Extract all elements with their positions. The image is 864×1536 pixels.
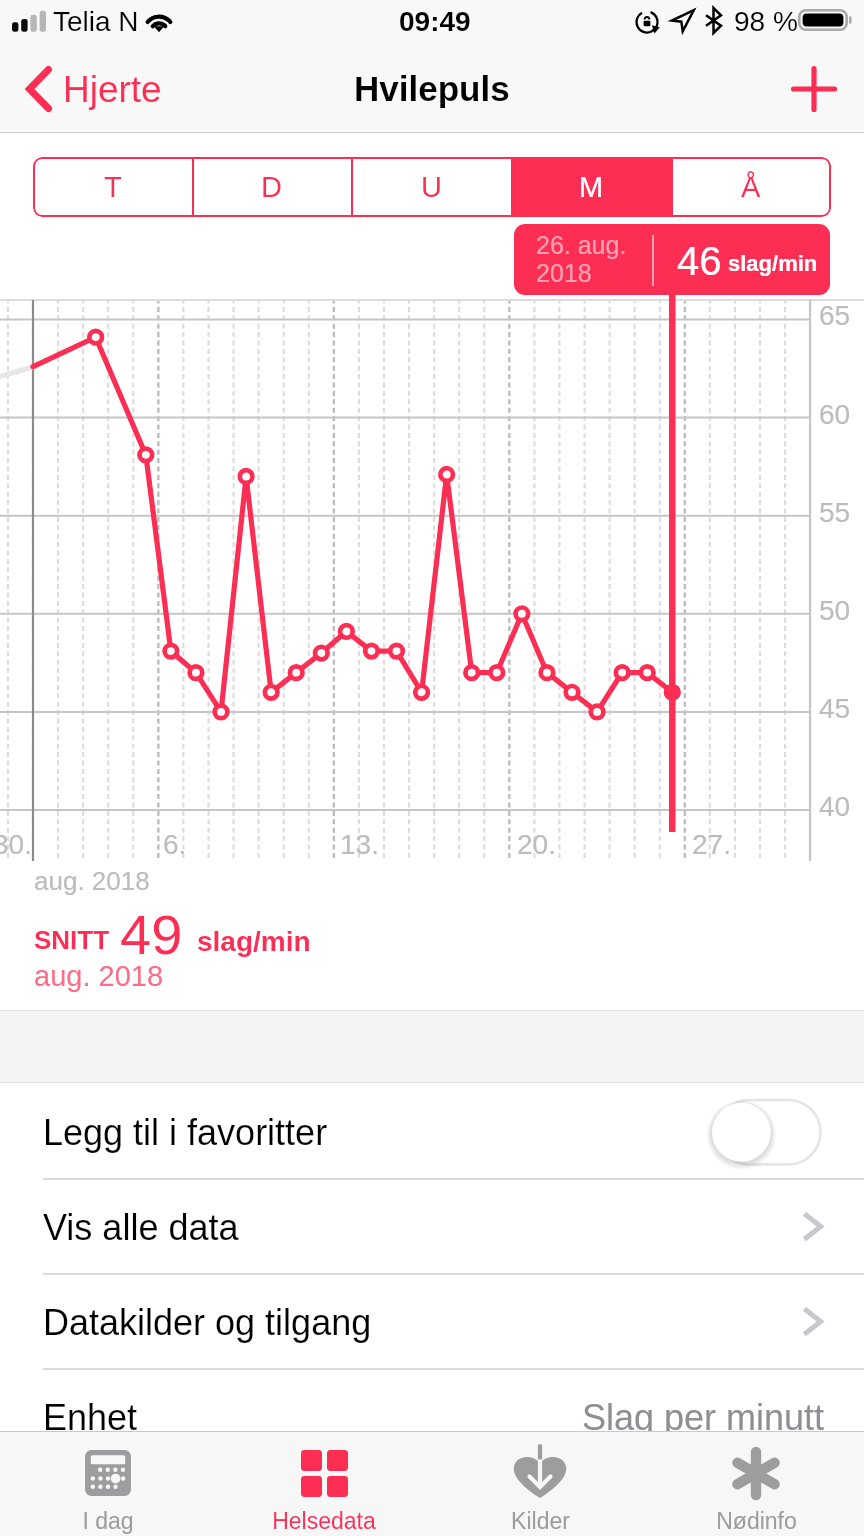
staticText: 13. (340, 829, 379, 860)
staticText: Nødinfo (716, 1508, 797, 1534)
button[interactable]: Legg til (782, 57, 846, 121)
staticText: slag/min (728, 251, 818, 276)
staticText: Enhet (43, 1397, 138, 1437)
button[interactable]: Kilder (432, 1432, 648, 1536)
staticText: Å (741, 171, 761, 203)
staticText: Helsedata (272, 1508, 376, 1534)
staticText: Telia N (53, 6, 139, 37)
button[interactable]: 26. aug. 2018 (514, 224, 830, 295)
staticText: slag/min (197, 926, 311, 957)
staticText: Legg til i favoritter (43, 1112, 328, 1152)
staticText: U (421, 171, 442, 203)
button[interactable]: U (351, 157, 511, 217)
button[interactable]: Vis alle data (0, 1180, 864, 1273)
staticText: 65 (819, 300, 851, 331)
button[interactable]: Å (671, 157, 831, 217)
staticText: D (261, 171, 282, 203)
staticText: 09:49 (399, 6, 471, 37)
staticText: aug. 2018 (34, 960, 164, 992)
staticText: 98 % (734, 6, 798, 37)
staticText: Hjerte (63, 69, 162, 110)
button[interactable]: I dag (0, 1432, 216, 1536)
button[interactable]: Hjerte (0, 56, 178, 126)
staticText: I dag (82, 1508, 134, 1534)
staticText: T (104, 171, 122, 203)
staticText: 6. (163, 829, 187, 860)
staticText: Datakilder og tilgang (43, 1302, 372, 1342)
button[interactable]: M (511, 157, 671, 217)
staticText: Kilder (511, 1508, 570, 1534)
staticText: 50 (819, 595, 851, 626)
button[interactable]: Legg til i favoritter (0, 1085, 864, 1178)
staticText: 27. (692, 829, 731, 860)
staticText: 55 (819, 497, 851, 528)
staticText: 46 (677, 239, 722, 284)
staticText: aug. 2018 (34, 866, 150, 895)
staticText: 20. (517, 829, 556, 860)
button[interactable]: D (192, 157, 351, 217)
staticText: M (579, 171, 604, 203)
button[interactable]: Helsedata (216, 1432, 432, 1536)
staticText: Vis alle data (43, 1207, 239, 1247)
staticText: 49 (120, 903, 183, 966)
staticText: 30. (0, 829, 32, 860)
staticText: 40 (819, 791, 851, 822)
button[interactable]: Datakilder og tilgang (0, 1275, 864, 1368)
staticText: Slag per minutt (582, 1397, 825, 1437)
staticText: 60 (819, 399, 851, 430)
staticText: 26. aug. 2018 (536, 231, 627, 288)
button[interactable]: Nødinfo (648, 1432, 864, 1536)
staticText: Hvilepuls (354, 69, 510, 108)
staticText: 45 (819, 693, 851, 724)
button[interactable]: Legg til i favoritter (711, 1093, 827, 1171)
button[interactable]: T (33, 157, 192, 217)
button[interactable]: Enhet (0, 1370, 864, 1463)
staticText: SNITT (34, 925, 110, 954)
